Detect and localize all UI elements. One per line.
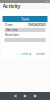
staticText: SUBMIT [36, 52, 45, 55]
button[interactable]: Back [10, 92, 20, 100]
staticText: Date [4, 22, 12, 27]
button[interactable]: CANCEL [19, 51, 32, 56]
button[interactable]: Recent apps [30, 92, 40, 100]
staticText: 09/04/2020 [27, 22, 45, 27]
staticText: Activity [2, 2, 20, 10]
staticText: Task name [6, 28, 18, 32]
staticText: CANCEL [21, 52, 31, 55]
button[interactable]: Home [20, 92, 30, 100]
button[interactable]: SUBMIT [34, 51, 46, 56]
staticText: Number [4, 32, 19, 37]
staticText: Task [21, 16, 29, 22]
